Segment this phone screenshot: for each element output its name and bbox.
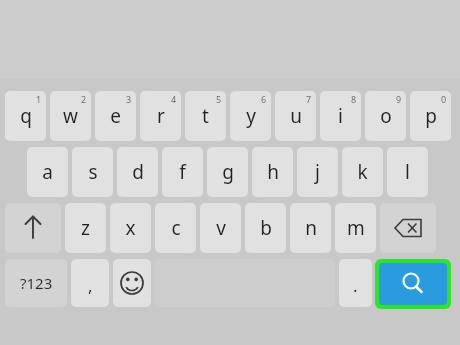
button[interactable]: r: [140, 91, 181, 141]
staticText: r: [157, 103, 165, 129]
button[interactable]: Shift: [5, 203, 61, 253]
button[interactable]: u: [275, 91, 316, 141]
button[interactable]: a: [27, 147, 68, 197]
staticText: l: [405, 159, 410, 185]
staticText: e: [110, 103, 121, 129]
staticText: 4: [171, 93, 177, 105]
staticText: c: [171, 215, 181, 241]
staticText: u: [290, 103, 302, 129]
button[interactable]: y: [230, 91, 271, 141]
button[interactable]: Backspace: [380, 203, 436, 253]
staticText: z: [81, 215, 90, 241]
button[interactable]: ,: [71, 259, 109, 307]
staticText: k: [357, 159, 368, 185]
staticText: q: [20, 103, 32, 129]
staticText: h: [267, 159, 279, 185]
staticText: g: [222, 159, 234, 185]
staticText: ?123: [20, 273, 53, 293]
button[interactable]: m: [335, 203, 376, 253]
staticText: i: [338, 103, 343, 129]
button[interactable]: ?123: [5, 259, 67, 307]
staticText: x: [125, 215, 136, 241]
button[interactable]: q: [5, 91, 46, 141]
button[interactable]: c: [155, 203, 196, 253]
button[interactable]: n: [290, 203, 331, 253]
staticText: y: [246, 103, 256, 129]
staticText: 7: [306, 93, 312, 105]
staticText: 0: [441, 93, 447, 105]
staticText: 5: [216, 93, 222, 105]
staticText: o: [380, 103, 392, 129]
staticText: a: [42, 159, 53, 185]
staticText: 6: [261, 93, 267, 105]
button[interactable]: Emoji: [113, 259, 151, 307]
button[interactable]: t: [185, 91, 226, 141]
button[interactable]: s: [72, 147, 113, 197]
staticText: j: [315, 159, 320, 185]
button[interactable]: v: [200, 203, 241, 253]
button[interactable]: e: [95, 91, 136, 141]
staticText: v: [216, 215, 226, 241]
staticText: s: [88, 159, 98, 185]
button[interactable]: f: [162, 147, 203, 197]
staticText: m: [347, 215, 365, 241]
staticText: p: [425, 103, 437, 129]
staticText: t: [202, 103, 209, 129]
button[interactable]: l: [387, 147, 428, 197]
button[interactable]: g: [207, 147, 248, 197]
button[interactable]: z: [65, 203, 106, 253]
button[interactable]: x: [110, 203, 151, 253]
staticText: 2: [81, 93, 87, 105]
button[interactable]: .: [339, 259, 372, 307]
staticText: d: [132, 159, 144, 185]
button[interactable]: k: [342, 147, 383, 197]
staticText: .: [353, 274, 358, 297]
button[interactable]: j: [297, 147, 338, 197]
staticText: ,: [88, 274, 93, 297]
button[interactable]: b: [245, 203, 286, 253]
button[interactable]: d: [117, 147, 158, 197]
button[interactable]: i: [320, 91, 361, 141]
staticText: w: [63, 103, 78, 129]
button[interactable]: o: [365, 91, 406, 141]
staticText: n: [305, 215, 317, 241]
staticText: f: [179, 159, 186, 185]
staticText: b: [260, 215, 272, 241]
staticText: 9: [396, 93, 402, 105]
staticText: 1: [36, 93, 42, 105]
button[interactable]: Search: [379, 263, 447, 305]
button[interactable]: h: [252, 147, 293, 197]
button[interactable]: p: [410, 91, 451, 141]
staticText: 3: [126, 93, 132, 105]
button[interactable]: w: [50, 91, 91, 141]
staticText: 8: [351, 93, 357, 105]
